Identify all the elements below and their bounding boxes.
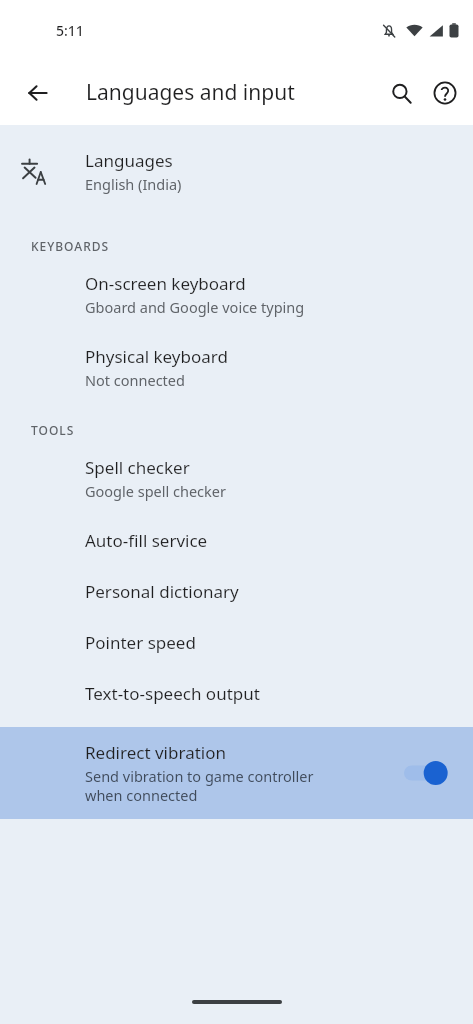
- staticText: Gboard and Google voice typing: [85, 297, 305, 317]
- button[interactable]: Pointer speed: [0, 631, 473, 654]
- button[interactable]: Personal dictionary: [0, 580, 473, 603]
- staticText: Text-to-speech output: [85, 682, 260, 705]
- staticText: Personal dictionary: [85, 580, 239, 603]
- staticText: Spell checker: [85, 456, 190, 479]
- button[interactable]: On-screen keyboard: [0, 272, 473, 317]
- button[interactable]: Redirect vibration toggle: [404, 758, 448, 788]
- staticText: Physical keyboard: [85, 345, 228, 368]
- button[interactable]: Back: [14, 69, 62, 117]
- button[interactable]: Languages: [0, 135, 473, 208]
- staticText: Pointer speed: [85, 631, 196, 654]
- staticText: Auto-fill service: [85, 529, 208, 552]
- button[interactable]: Search: [377, 69, 425, 117]
- button[interactable]: Auto-fill service: [0, 529, 473, 552]
- staticText: Send vibration to game controller when c…: [85, 766, 314, 805]
- staticText: Redirect vibration: [85, 741, 226, 764]
- staticText: Languages: [85, 149, 173, 172]
- staticText: Google spell checker: [85, 481, 226, 501]
- staticText: TOOLS: [31, 422, 75, 438]
- button[interactable]: Spell checker: [0, 456, 473, 501]
- staticText: Languages and input: [86, 78, 295, 107]
- button[interactable]: Physical keyboard: [0, 345, 473, 390]
- staticText: English (India): [85, 174, 182, 194]
- staticText: 5:11: [56, 21, 84, 40]
- button[interactable]: Redirect vibration: [0, 727, 473, 819]
- button[interactable]: Help: [425, 69, 465, 117]
- staticText: KEYBOARDS: [31, 238, 110, 254]
- button[interactable]: Text-to-speech output: [0, 682, 473, 705]
- staticText: On-screen keyboard: [85, 272, 246, 295]
- staticText: Not connected: [85, 370, 185, 390]
